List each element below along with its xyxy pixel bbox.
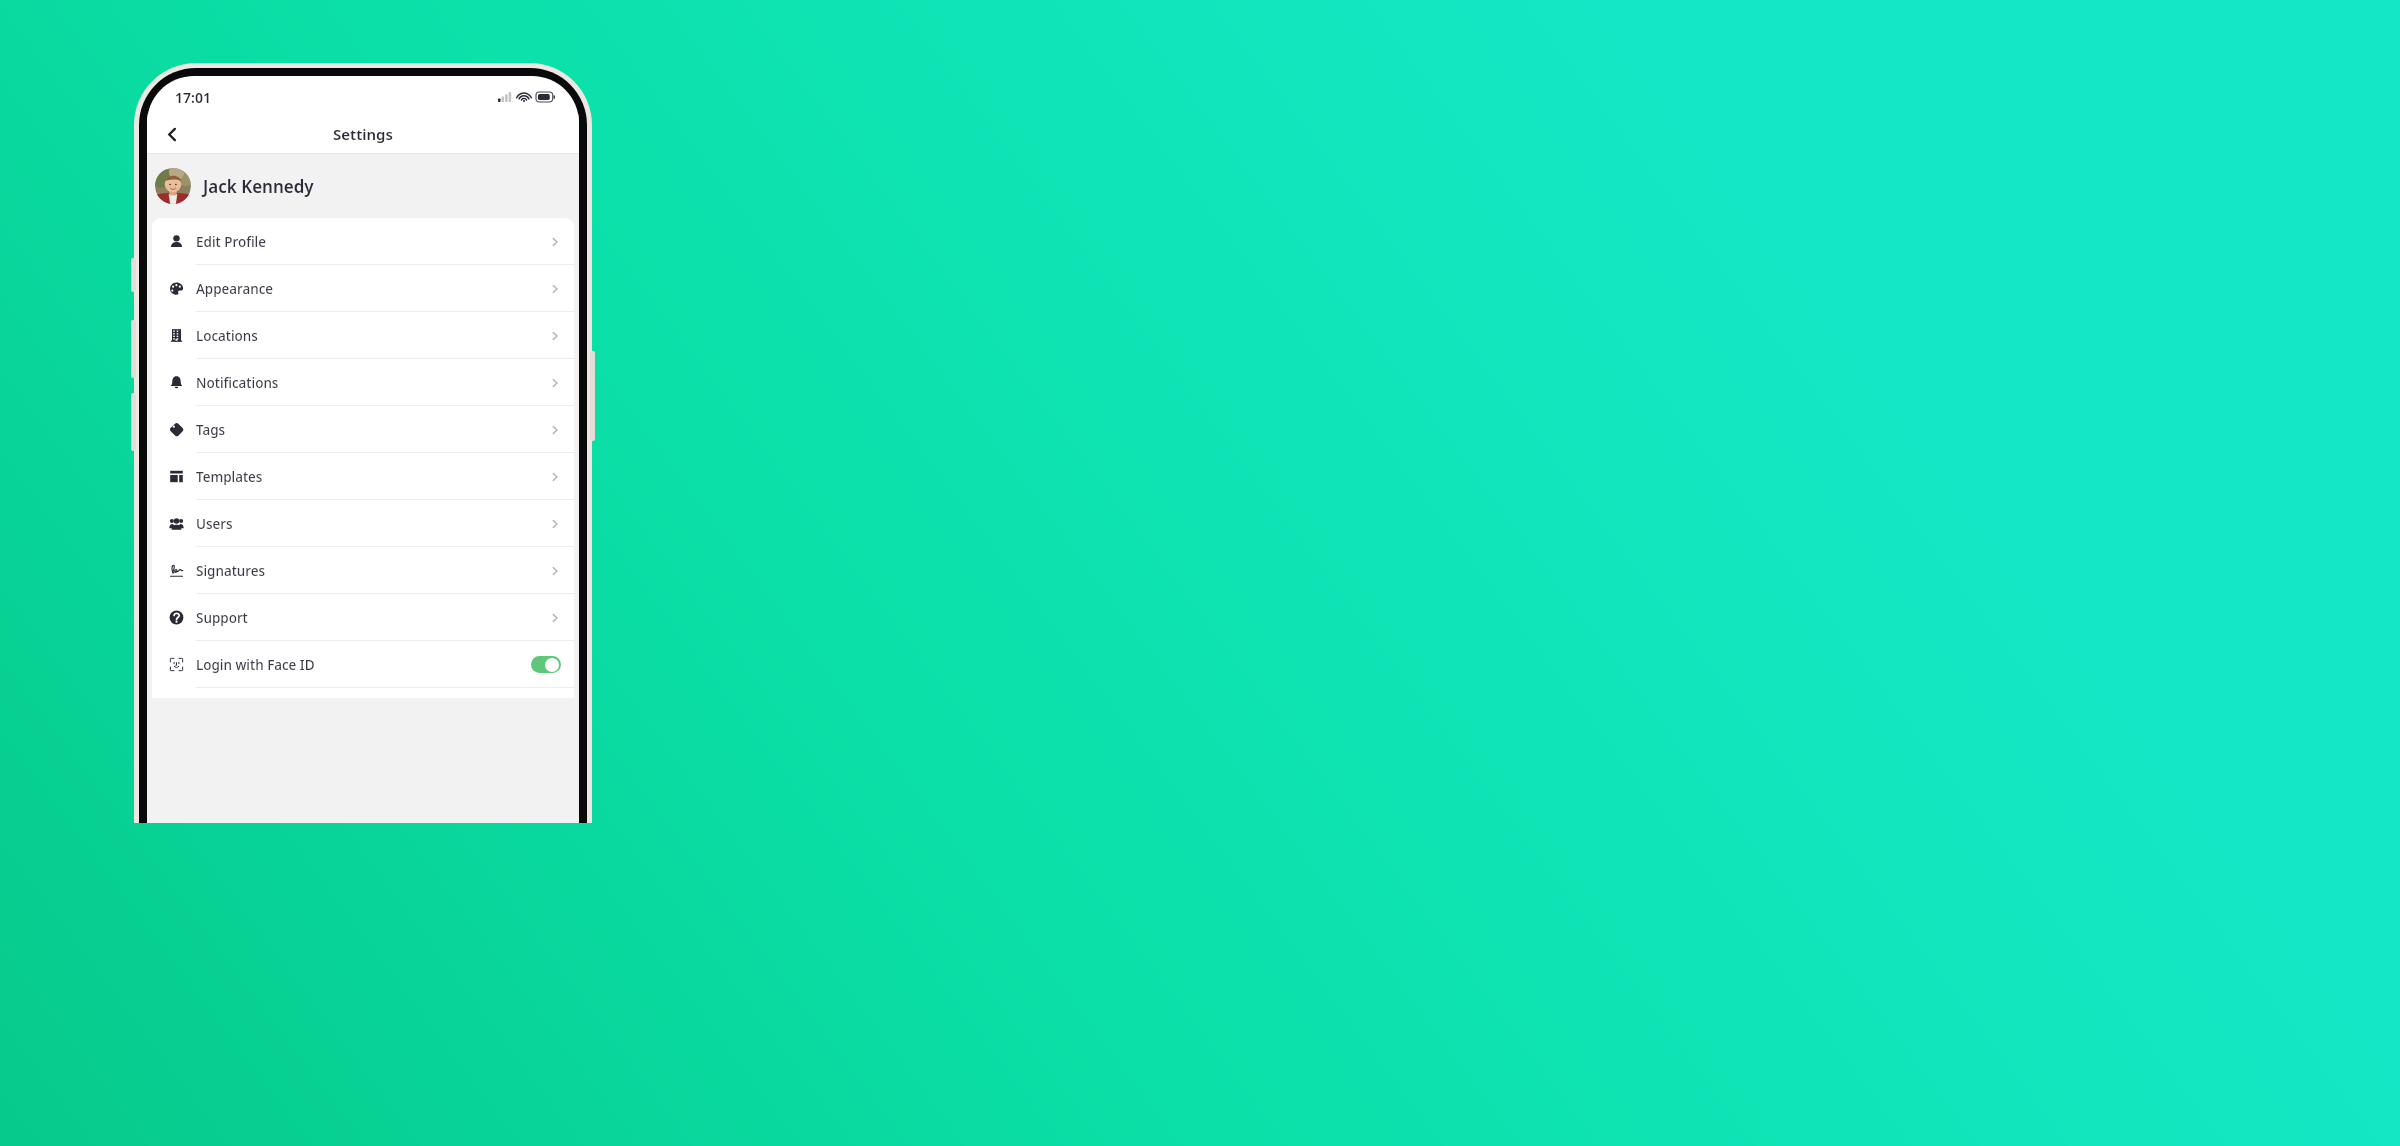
button[interactable]: Edit Profile xyxy=(152,218,574,265)
staticText: Templates xyxy=(196,468,263,486)
staticText: Appearance xyxy=(196,280,274,298)
staticText: Settings xyxy=(333,124,393,144)
staticText: Jack Kennedy xyxy=(203,175,314,198)
button[interactable]: Jack Kennedy xyxy=(147,154,579,218)
staticText: Users xyxy=(196,515,233,533)
staticText: Tags xyxy=(196,421,226,439)
button[interactable]: Signatures xyxy=(152,547,574,594)
staticText: Login with Face ID xyxy=(196,656,315,674)
staticText: Support xyxy=(196,609,248,627)
button[interactable]: Appearance xyxy=(152,265,574,312)
staticText: Locations xyxy=(196,327,258,345)
button[interactable]: Notifications xyxy=(152,359,574,406)
button[interactable]: Login with Face ID xyxy=(152,641,574,688)
button[interactable]: Support xyxy=(152,594,574,641)
button[interactable]: Tags xyxy=(152,406,574,453)
button[interactable]: Back xyxy=(155,117,189,151)
button[interactable]: Users xyxy=(152,500,574,547)
button[interactable]: Locations xyxy=(152,312,574,359)
button[interactable]: Login with Face ID toggle xyxy=(531,656,561,673)
button[interactable]: Templates xyxy=(152,453,574,500)
staticText: Edit Profile xyxy=(196,233,266,251)
staticText: 17:01 xyxy=(175,88,211,107)
staticText: Signatures xyxy=(196,562,266,580)
staticText: Notifications xyxy=(196,374,279,392)
